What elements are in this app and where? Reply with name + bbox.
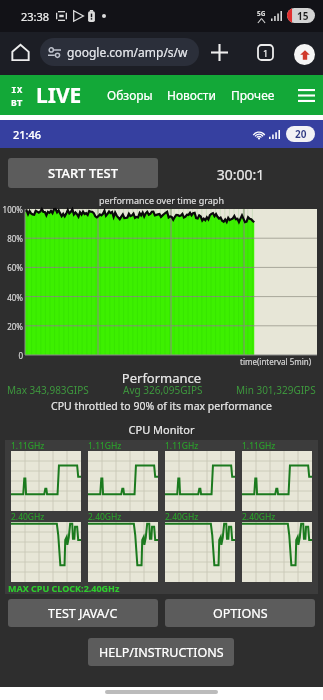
- staticText: 80%: [0, 233, 23, 244]
- staticText: 2.40GHz: [11, 511, 45, 523]
- button[interactable]: Tabs: [251, 38, 279, 66]
- button[interactable]: START TEST: [8, 158, 158, 188]
- button[interactable]: Downloads: [294, 44, 315, 65]
- staticText: TEST JAVA/C: [48, 605, 118, 622]
- staticText: IX: [11, 83, 23, 96]
- staticText: 23:38: [21, 9, 50, 24]
- button[interactable]: HELP/INSTRUCTIONS: [88, 638, 234, 666]
- staticText: 2.40GHz: [242, 511, 276, 523]
- staticText: 30:00:1: [158, 165, 323, 184]
- staticText: CPU throttled to 90% of its max performa…: [0, 399, 323, 413]
- button[interactable]: TEST JAVA/C: [8, 599, 158, 627]
- staticText: google.com/amp/s/w: [67, 44, 188, 60]
- staticText: 0: [0, 350, 23, 361]
- staticText: 60%: [0, 262, 23, 273]
- button[interactable]: Прочее: [231, 87, 275, 103]
- staticText: Avg 326,095GIPS: [123, 383, 203, 397]
- button[interactable]: Home: [6, 38, 35, 67]
- staticText: 1: [263, 47, 269, 59]
- staticText: 1.11GHz: [88, 440, 122, 452]
- button[interactable]: New tab: [205, 38, 233, 66]
- button[interactable]: google.com/amp/s/w: [40, 38, 199, 66]
- staticText: 20: [295, 127, 307, 141]
- staticText: Max 343,983GIPS: [7, 383, 89, 397]
- staticText: OPTIONS: [213, 605, 268, 622]
- staticText: 2.40GHz: [88, 511, 122, 523]
- staticText: BT: [11, 96, 23, 109]
- staticText: 15: [297, 9, 309, 23]
- staticText: 40%: [0, 292, 23, 303]
- staticText: 1.11GHz: [165, 440, 199, 452]
- staticText: 100%: [0, 204, 23, 215]
- button[interactable]: Новости: [167, 87, 216, 103]
- staticText: 2.40GHz: [165, 511, 199, 523]
- button[interactable]: OPTIONS: [165, 599, 315, 627]
- staticText: START TEST: [48, 164, 118, 182]
- staticText: 5G: [257, 9, 266, 18]
- button[interactable]: IX: [11, 83, 23, 109]
- staticText: HELP/INSTRUCTIONS: [99, 644, 224, 661]
- staticText: 20%: [0, 321, 23, 332]
- staticText: time(interval 5min): [240, 356, 312, 367]
- staticText: CPU Monitor: [0, 422, 323, 437]
- staticText: 1.11GHz: [11, 440, 45, 452]
- button[interactable]: Menu: [293, 82, 319, 108]
- staticText: performance over time graph: [99, 194, 224, 206]
- staticText: Min 301,329GIPS: [236, 383, 316, 397]
- button[interactable]: LIVE: [36, 81, 82, 110]
- button[interactable]: Обзоры: [107, 87, 153, 103]
- staticText: 21:46: [13, 127, 42, 142]
- staticText: MAX CPU CLOCK:2.40GHz: [8, 582, 120, 594]
- staticText: 1.11GHz: [242, 440, 276, 452]
- staticText: Performance: [0, 369, 323, 387]
